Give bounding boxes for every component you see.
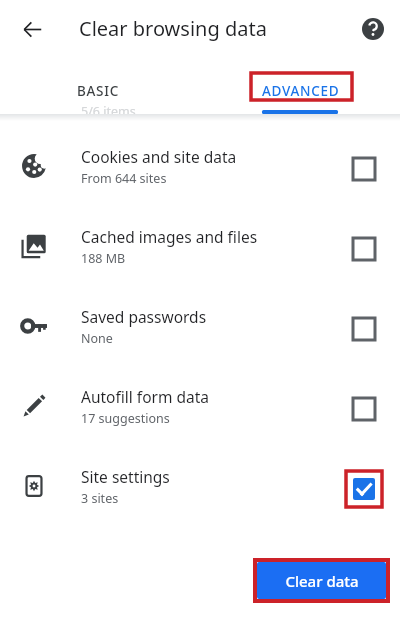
staticText: Cookies and site data: [81, 146, 237, 167]
button[interactable]: ADVANCED: [220, 72, 380, 110]
staticText: Clear data: [285, 571, 359, 591]
button[interactable]: Cookies: [0, 126, 400, 206]
staticText: Cached images and files: [81, 226, 258, 247]
staticText: Autofill form data: [81, 386, 209, 407]
button[interactable]: Site settings checked: [344, 469, 384, 509]
button[interactable]: BASIC: [20, 72, 180, 110]
button[interactable]: Clear data: [257, 562, 386, 599]
button[interactable]: Cached images: [0, 206, 400, 286]
staticText: From 644 sites: [81, 170, 167, 187]
staticText: None: [81, 330, 113, 347]
other: Site settings: [21, 473, 47, 499]
other: Autofill: [21, 393, 47, 419]
button[interactable]: Cached images and files unchecked: [344, 229, 384, 269]
other: Cookies: [21, 153, 47, 179]
staticText: 3 sites: [81, 490, 119, 507]
button[interactable]: Autofill form data unchecked: [344, 389, 384, 429]
staticText: 188 MB: [81, 250, 126, 267]
staticText: BASIC: [77, 82, 119, 100]
other: Cached images: [21, 233, 47, 259]
other: Passwords: [21, 313, 47, 339]
button[interactable]: Back: [10, 7, 54, 51]
button[interactable]: Autofill: [0, 366, 400, 446]
staticText: Clear browsing data: [79, 15, 267, 42]
button[interactable]: Cookies and site data unchecked: [344, 149, 384, 189]
staticText: Site settings: [81, 466, 170, 487]
staticText: ADVANCED: [262, 82, 340, 100]
button[interactable]: Site settings: [0, 446, 400, 526]
staticText: Saved passwords: [81, 306, 207, 327]
button[interactable]: Saved passwords unchecked: [344, 309, 384, 349]
staticText: 17 suggestions: [81, 410, 170, 427]
staticText: 5/6 items: [81, 103, 136, 120]
button[interactable]: Passwords: [0, 286, 400, 366]
button[interactable]: Help: [351, 7, 395, 51]
